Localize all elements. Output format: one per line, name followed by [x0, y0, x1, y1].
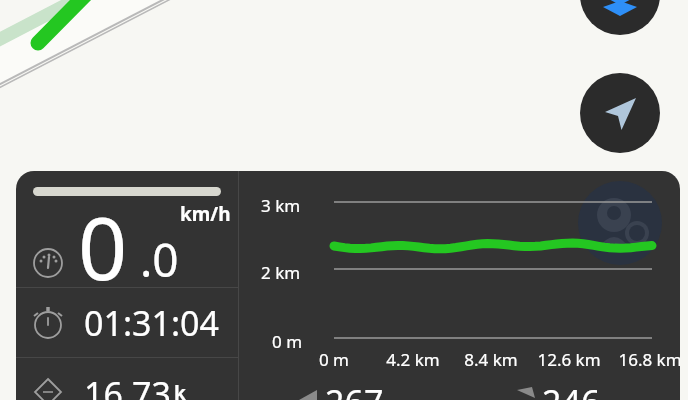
staticText: 0: [78, 188, 128, 294]
staticText: 16.73: [84, 371, 171, 400]
staticText: 267: [325, 379, 384, 400]
staticText: .0: [140, 228, 179, 291]
button[interactable]: 3 km: [239, 171, 680, 365]
button[interactable]: 0: [16, 181, 238, 287]
button[interactable]: 01:31:04: [16, 288, 238, 357]
button[interactable]: Map layers: [580, 0, 660, 35]
staticText: k: [174, 380, 186, 400]
staticText: 0 m: [300, 348, 368, 372]
staticText: 0 m: [272, 330, 303, 353]
staticText: 12.6 km: [535, 348, 603, 372]
button[interactable]: My location: [580, 73, 660, 153]
staticText: 8.4 km: [457, 348, 525, 372]
staticText: 3 km: [261, 194, 301, 217]
staticText: 4.2 km: [379, 348, 447, 372]
staticText: km/h: [180, 201, 231, 227]
staticText: 01:31:04: [84, 300, 219, 346]
button[interactable]: 16.73: [16, 358, 238, 400]
staticText: 246: [542, 379, 601, 400]
staticText: 16.8 km: [616, 348, 680, 372]
staticText: 2 km: [261, 261, 301, 284]
